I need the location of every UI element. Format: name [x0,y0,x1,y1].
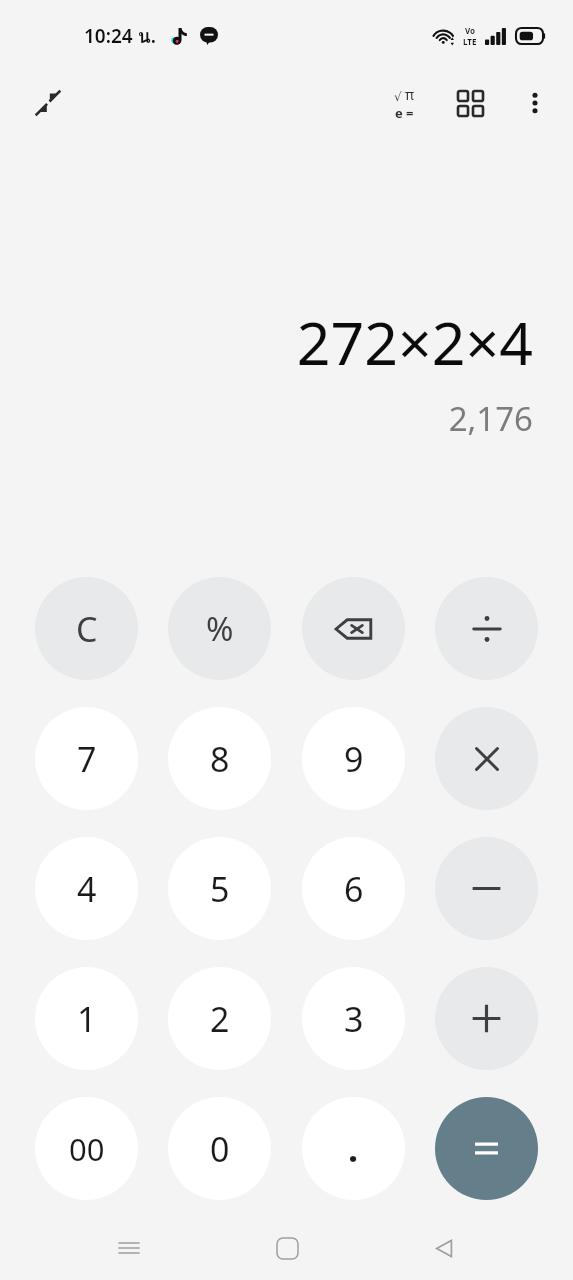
button[interactable]: Home [259,1220,315,1276]
button[interactable]: Divide [435,577,538,680]
button[interactable]: 00 [35,1097,138,1200]
staticText: e [395,104,403,122]
staticText: Vo [465,25,476,36]
staticText: 7 [77,736,97,782]
staticText: 2 [210,996,230,1042]
staticText: 4 [77,866,97,912]
button[interactable]: 1 [35,967,138,1070]
button[interactable]: 9 [302,707,405,810]
button[interactable]: Recents [101,1220,157,1276]
button[interactable]: Multiply [435,707,538,810]
staticText: % [206,606,234,651]
button[interactable]: 2 [168,967,271,1070]
button[interactable]: 5 [168,837,271,940]
button[interactable]: More options [509,77,561,129]
button[interactable]: Back [416,1220,472,1276]
button[interactable]: 8 [168,707,271,810]
button[interactable]: 0 [168,1097,271,1200]
staticText: π [405,85,415,104]
staticText: LTE [463,36,477,47]
button[interactable]: 3 [302,967,405,1070]
button[interactable]: Collapse [22,77,74,129]
staticText: 2,176 [448,396,533,441]
staticText: 9 [344,736,364,782]
button[interactable]: Equals [435,1097,538,1200]
staticText: C [76,606,98,652]
staticText: 5 [210,866,230,912]
button[interactable]: Scientific calculator [377,76,431,130]
button[interactable]: Converters [443,76,497,130]
staticText: 272×2×4 [296,302,533,382]
button[interactable]: . [302,1097,405,1200]
staticText: 6 [344,866,364,912]
staticText: . [348,1124,359,1173]
button[interactable]: C [35,577,138,680]
button[interactable]: Minus [435,837,538,940]
staticText: 10:24 น. [84,21,156,51]
button[interactable]: % [168,577,271,680]
staticText: 0 [210,1126,230,1172]
button[interactable]: Backspace [302,577,405,680]
button[interactable]: 6 [302,837,405,940]
staticText: √ [394,90,402,104]
button[interactable]: Plus [435,967,538,1070]
staticText: = [406,104,414,122]
staticText: 1 [77,996,97,1042]
staticText: 3 [344,996,364,1042]
button[interactable]: 4 [35,837,138,940]
button[interactable]: 7 [35,707,138,810]
staticText: 00 [69,1128,105,1170]
staticText: 8 [210,736,230,782]
